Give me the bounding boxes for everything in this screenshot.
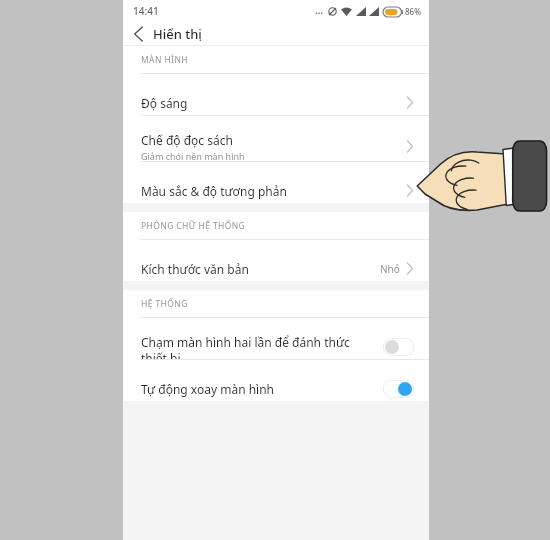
staticText: PHÔNG CHỮ HỆ THỐNG [141,220,246,232]
staticText: Hiển thị [153,25,202,43]
button[interactable]: Chạm màn hình hai lần để đánh thức thiết… [123,334,429,359]
staticText: Độ sáng [141,95,188,111]
other: Off [383,338,414,356]
staticText: Chạm màn hình hai lần để đánh thức thiết… [141,334,377,359]
staticText: MÀN HÌNH [141,54,188,66]
staticText: Nhỏ [380,262,400,276]
staticText: Màu sắc & độ tương phản [141,183,287,199]
button[interactable]: Độ sáng [123,90,429,115]
staticText: Chế độ đọc sách [141,132,233,148]
button[interactable]: Kích thước văn bản [123,256,429,281]
button[interactable]: Back [123,22,153,45]
staticText: Tự động xoay màn hình [141,381,377,397]
button[interactable]: Màu sắc & độ tương phản [123,178,429,203]
staticText: HỆ THỐNG [141,298,188,310]
button[interactable]: Chế độ đọc sách [123,132,429,161]
button[interactable]: Tự động xoay màn hình [123,376,429,401]
staticText: Kích thước văn bản [141,261,249,277]
staticText: 14:41 [133,4,159,18]
staticText: 86% [405,6,421,17]
staticText: Giảm chói nền màn hình [141,150,245,161]
other: On [383,380,414,398]
